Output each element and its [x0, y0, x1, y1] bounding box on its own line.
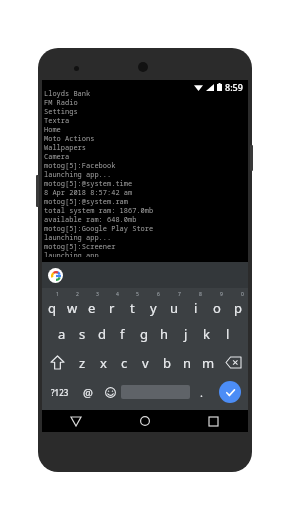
staticText: c: [121, 354, 128, 372]
staticText: a: [58, 325, 66, 343]
staticText: Lloyds Bank: [44, 89, 91, 98]
staticText: 9: [220, 291, 223, 298]
staticText: motog[5]:Facebook: [44, 161, 116, 170]
button[interactable]: d: [92, 319, 112, 348]
staticText: w: [67, 299, 78, 317]
button[interactable]: .: [190, 377, 212, 407]
button[interactable]: Backspace: [219, 348, 248, 377]
button[interactable]: Recents: [179, 410, 248, 432]
staticText: p: [234, 299, 242, 317]
button[interactable]: a: [52, 319, 72, 348]
staticText: h: [160, 325, 169, 343]
staticText: k: [203, 325, 210, 343]
staticText: .: [200, 385, 203, 400]
staticText: y: [150, 299, 157, 317]
staticText: motog[5]:@system.time: [44, 179, 133, 188]
staticText: 8:59: [225, 81, 243, 93]
button[interactable]: Home: [110, 410, 179, 432]
staticText: z: [79, 354, 86, 372]
staticText: e: [88, 299, 96, 317]
staticText: m: [202, 354, 215, 372]
button[interactable]: m: [198, 348, 219, 377]
button[interactable]: v: [135, 348, 156, 377]
staticText: b: [163, 354, 171, 372]
button[interactable]: Lloyds Bank: [42, 94, 248, 262]
button[interactable]: n: [177, 348, 198, 377]
staticText: FM Radio: [44, 98, 78, 107]
staticText: 3: [96, 291, 99, 298]
button[interactable]: 8: [185, 290, 206, 319]
button[interactable]: 1: [42, 290, 62, 319]
button[interactable]: Google search: [48, 268, 63, 283]
button[interactable]: b: [156, 348, 177, 377]
staticText: 8: [199, 291, 202, 298]
button[interactable]: ?123: [42, 377, 77, 407]
staticText: i: [194, 299, 198, 317]
button[interactable]: 4: [102, 290, 122, 319]
button[interactable]: k: [196, 319, 217, 348]
button[interactable]: h: [154, 319, 175, 348]
staticText: launching app...: [44, 251, 112, 257]
staticText: u: [170, 299, 179, 317]
staticText: motog[5]:Screener: [44, 242, 116, 251]
staticText: Settings: [44, 107, 78, 116]
staticText: Wallpapers: [44, 143, 86, 152]
button[interactable]: z: [72, 348, 93, 377]
button[interactable]: 9: [206, 290, 227, 319]
staticText: q: [48, 299, 56, 317]
staticText: 0: [241, 291, 244, 298]
staticText: o: [213, 299, 221, 317]
staticText: available ram: 648.0mb: [44, 215, 137, 224]
button[interactable]: Enter: [219, 381, 241, 403]
staticText: 7: [178, 291, 181, 298]
staticText: f: [120, 325, 125, 343]
button[interactable]: @: [77, 377, 99, 407]
staticText: 8 Apr 2018 8:57:42 am: [44, 188, 133, 197]
staticText: r: [109, 299, 115, 317]
button[interactable]: 6: [143, 290, 164, 319]
staticText: d: [98, 325, 106, 343]
button[interactable]: 5: [122, 290, 143, 319]
staticText: Textra: [44, 116, 70, 125]
button[interactable]: 3: [82, 290, 102, 319]
staticText: @: [83, 385, 93, 400]
button[interactable]: l: [217, 319, 238, 348]
staticText: launching app...: [44, 233, 112, 242]
staticText: Home: [44, 125, 61, 134]
staticText: Camera: [44, 152, 70, 161]
staticText: n: [183, 354, 192, 372]
staticText: v: [142, 354, 149, 372]
staticText: 4: [116, 291, 119, 298]
staticText: Moto Actions: [44, 134, 95, 143]
staticText: motog[5]:Google Play Store: [44, 224, 154, 233]
staticText: total system ram: 1867.0mb: [44, 206, 154, 215]
staticText: j: [184, 325, 188, 343]
staticText: 2: [76, 291, 79, 298]
button[interactable]: c: [114, 348, 135, 377]
staticText: 1: [56, 291, 59, 298]
button[interactable]: f: [112, 319, 133, 348]
staticText: 5: [136, 291, 139, 298]
button[interactable]: x: [93, 348, 114, 377]
button[interactable]: j: [175, 319, 196, 348]
button[interactable]: Shift: [42, 348, 72, 377]
button[interactable]: g: [133, 319, 154, 348]
staticText: ?123: [51, 387, 69, 398]
button[interactable]: 2: [62, 290, 82, 319]
button[interactable]: 0: [227, 290, 248, 319]
staticText: x: [100, 354, 107, 372]
staticText: g: [140, 325, 148, 343]
staticText: launching app...: [44, 170, 112, 179]
staticText: l: [226, 325, 230, 343]
button[interactable]: Emoji: [99, 377, 121, 407]
button[interactable]: s: [72, 319, 92, 348]
button[interactable]: Back: [42, 410, 110, 432]
staticText: s: [79, 325, 86, 343]
button[interactable]: 7: [164, 290, 185, 319]
staticText: motog[5]:@system.ram: [44, 197, 128, 206]
staticText: 6: [157, 291, 160, 298]
staticText: t: [130, 299, 135, 317]
